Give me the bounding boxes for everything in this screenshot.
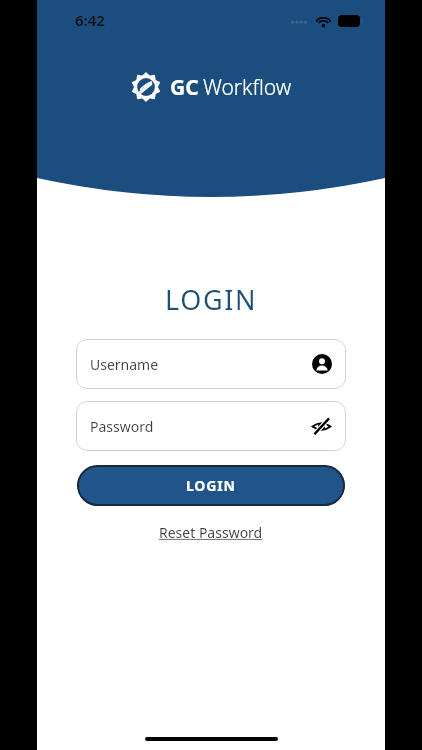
staticText: Workflow [203,73,292,102]
other: Username [312,354,332,374]
button[interactable]: LOGIN [77,465,345,506]
button[interactable]: Username [76,339,346,389]
staticText: Username [90,355,159,374]
other: Show password [311,416,332,437]
staticText: Password [90,417,154,436]
staticText: 6:42 [75,10,105,30]
button[interactable]: Password [76,401,346,451]
staticText: LOGIN [186,476,236,495]
button[interactable]: Reset Password [153,520,269,545]
staticText: Reset Password [159,523,263,542]
staticText: GC [170,73,199,102]
staticText: LOGIN [165,281,258,318]
